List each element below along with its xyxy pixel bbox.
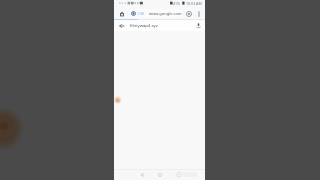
button[interactable]: Reload page: [184, 9, 193, 18]
button[interactable]: More options: [194, 9, 203, 18]
button[interactable]: Address bar: [128, 9, 182, 18]
button[interactable]: Home: [155, 170, 165, 180]
button[interactable]: Back: [117, 21, 126, 30]
staticText: 10:03 AM: [186, 1, 202, 6]
button[interactable]: Back: [137, 170, 147, 180]
button[interactable]: Voice search: [194, 21, 203, 30]
staticText: www.google.com: [149, 11, 182, 16]
staticText: filmywap4.xyz: [130, 23, 158, 29]
staticText: 1.0K: [137, 11, 145, 16]
staticText: 41%: [173, 1, 181, 6]
button[interactable]: Home: [117, 9, 126, 18]
button[interactable]: Recent apps: [172, 170, 200, 180]
